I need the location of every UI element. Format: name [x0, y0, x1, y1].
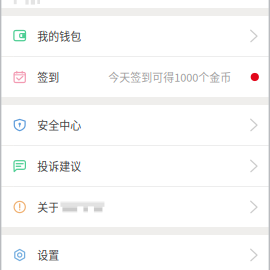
button[interactable]: 安全中心 — [0, 105, 270, 145]
button[interactable]: 投诉建议 — [0, 146, 270, 186]
staticText: 设置 — [37, 247, 59, 263]
button[interactable]: 签到 — [0, 57, 270, 97]
staticText: 今天签到可得1000个金币 — [108, 69, 231, 85]
staticText: 投诉建议 — [37, 158, 81, 174]
button[interactable]: 关于 — [0, 187, 270, 227]
button[interactable]: 我的钱包 — [0, 16, 270, 56]
staticText: 我的钱包 — [37, 28, 81, 44]
staticText: 关于 — [37, 199, 59, 215]
button[interactable]: 设置 — [0, 235, 270, 270]
staticText: 安全中心 — [37, 117, 81, 133]
staticText: 签到 — [37, 69, 59, 85]
